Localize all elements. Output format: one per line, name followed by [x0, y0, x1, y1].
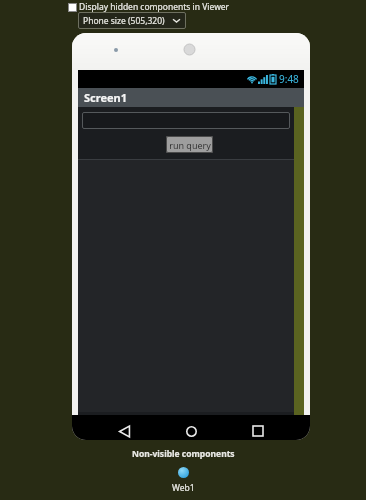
staticText: Web1 [172, 482, 195, 494]
button[interactable]: run query [166, 136, 213, 153]
button[interactable]: Display hidden components in Viewer [68, 1, 230, 13]
button[interactable]: Back [109, 416, 139, 440]
staticText: 9:48 [279, 72, 299, 86]
button[interactable]: Recent apps [243, 416, 273, 440]
button[interactable]: Web1 component [178, 467, 189, 478]
staticText: Phone size (505,320) [83, 15, 165, 27]
staticText: Display hidden components in Viewer [79, 1, 230, 13]
staticText: run query [169, 139, 211, 151]
staticText: Non-visible components [132, 448, 235, 460]
staticText: Screen1 [84, 90, 128, 105]
button[interactable]: Phone size (505,320) [78, 12, 186, 29]
button[interactable] [82, 112, 290, 129]
button[interactable]: Home [176, 416, 206, 440]
